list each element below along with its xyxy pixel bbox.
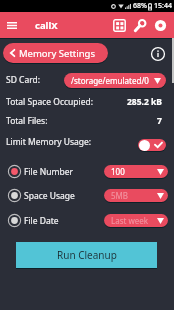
staticText: callX xyxy=(35,19,58,32)
button[interactable]: 5MB xyxy=(104,189,168,202)
staticText: 68% xyxy=(133,1,147,11)
staticText: File Number xyxy=(24,166,73,178)
button[interactable]: Memory Settings xyxy=(3,43,108,63)
button[interactable]: Last week xyxy=(104,214,168,227)
button[interactable]: Record xyxy=(150,12,171,38)
button[interactable]: Open navigation menu xyxy=(0,12,23,38)
staticText: SD Card: xyxy=(6,74,41,86)
staticText: File Date xyxy=(24,215,59,227)
button[interactable]: File Date xyxy=(8,208,168,233)
button[interactable]: Space Usage xyxy=(8,183,168,208)
button[interactable]: 100 xyxy=(104,165,168,178)
staticText: 100 xyxy=(111,166,125,177)
button[interactable]: Information xyxy=(147,43,169,64)
staticText: Total Space Occupied: xyxy=(6,96,94,108)
staticText: 15:44 xyxy=(154,1,172,11)
staticText: 285.2 kB xyxy=(127,96,162,108)
button[interactable]: Run Cleanup xyxy=(16,242,157,268)
button[interactable]: Apps grid xyxy=(108,12,130,38)
button[interactable]: Limit memory usage toggle, on xyxy=(138,139,166,151)
button[interactable]: /storage/emulated/0 xyxy=(64,73,166,88)
staticText: Total Files: xyxy=(6,115,48,127)
staticText: 7 xyxy=(157,115,162,127)
staticText: 5MB xyxy=(111,190,129,201)
button[interactable]: Search xyxy=(130,12,151,38)
staticText: Last week xyxy=(111,215,149,226)
staticText: /storage/emulated/0 xyxy=(71,75,149,86)
staticText: Space Usage xyxy=(24,190,75,202)
staticText: Limit Memory Usage: xyxy=(6,136,92,148)
staticText: Run Cleanup xyxy=(57,248,117,262)
button[interactable]: File Number xyxy=(8,159,168,184)
staticText: Memory Settings xyxy=(19,47,95,60)
